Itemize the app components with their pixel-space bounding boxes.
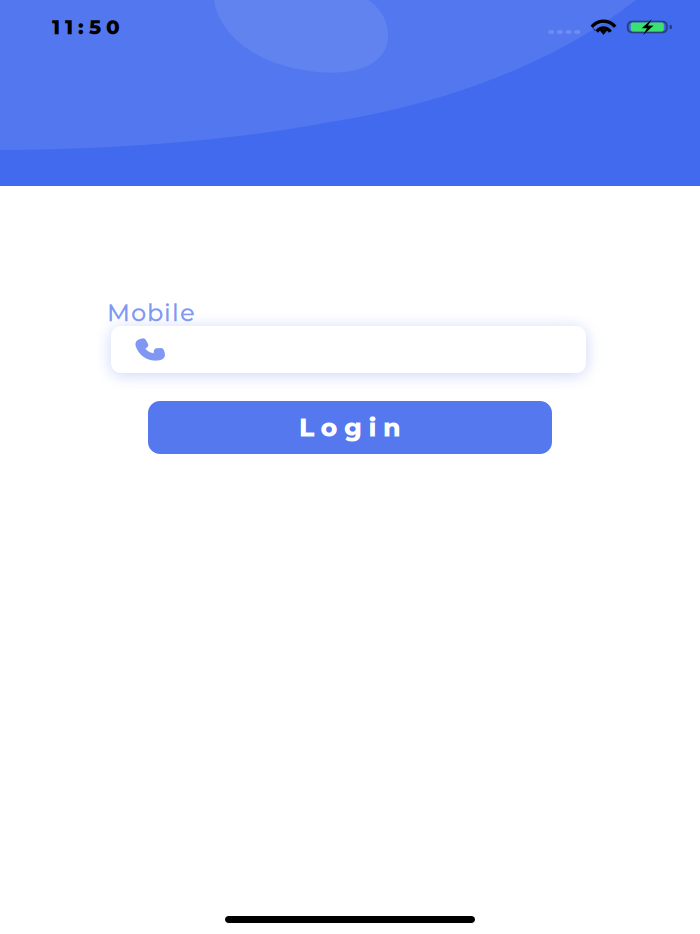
staticText: Login xyxy=(299,412,401,443)
button[interactable]: Login xyxy=(148,401,552,454)
staticText: 11:50 xyxy=(52,15,120,39)
staticText: Mobile xyxy=(107,298,195,327)
